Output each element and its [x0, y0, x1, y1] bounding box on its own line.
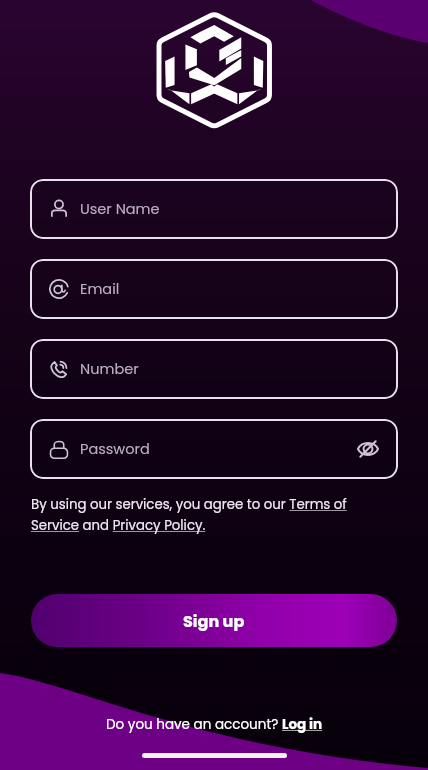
button[interactable]: Show password — [350, 431, 386, 467]
button[interactable]: Sign up — [31, 594, 397, 647]
staticText: Sign up — [183, 610, 245, 632]
staticText: Email — [80, 279, 120, 299]
staticText: User Name — [80, 199, 160, 219]
button[interactable]: User Name — [30, 179, 398, 239]
staticText: Log in — [282, 715, 323, 734]
button[interactable]: Log in — [282, 715, 323, 734]
staticText: Number — [80, 359, 139, 379]
button[interactable]: Password — [30, 419, 398, 479]
staticText: Do you have an account? — [106, 715, 282, 734]
button[interactable]: Number — [30, 339, 398, 399]
staticText: By using our services, you agree to our … — [31, 495, 397, 535]
staticText: Password — [80, 439, 150, 459]
button[interactable]: Email — [30, 259, 398, 319]
